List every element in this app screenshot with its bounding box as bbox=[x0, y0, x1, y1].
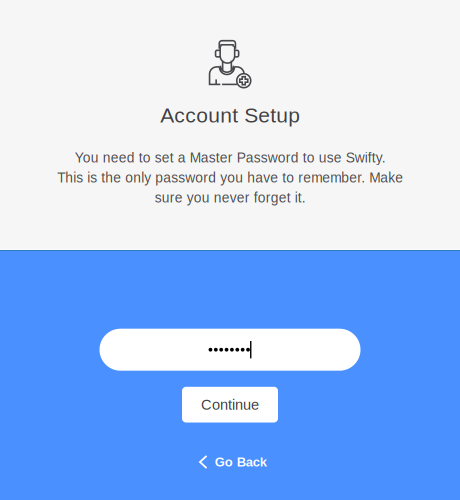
staticText: You need to set a Master Password to use… bbox=[57, 150, 403, 205]
staticText: Account Setup bbox=[160, 103, 300, 127]
staticText: Continue bbox=[201, 396, 259, 413]
button[interactable]: Go Back bbox=[193, 451, 267, 473]
button[interactable]: Continue bbox=[182, 387, 278, 422]
staticText: Go Back bbox=[215, 455, 267, 469]
